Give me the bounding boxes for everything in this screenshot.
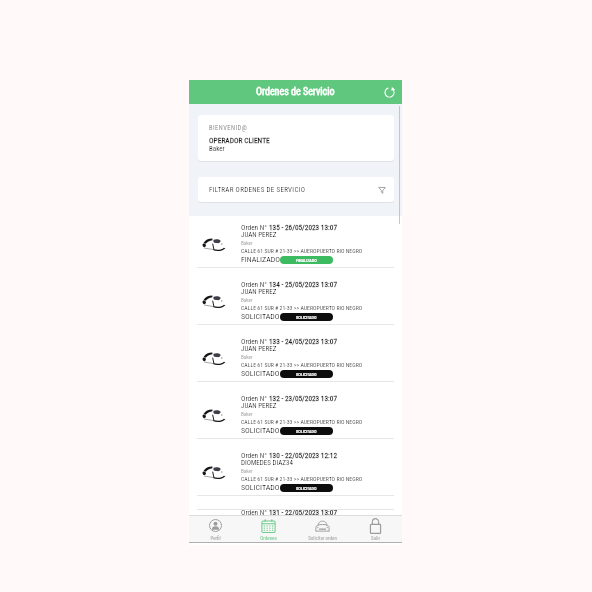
button[interactable]: Orden N°	[189, 382, 402, 439]
staticText: Ordenes	[260, 535, 277, 541]
staticText: SOLICITADO	[296, 315, 317, 320]
staticText: CALLE 61 SUR # 21-33 >> AUEROPUERTO RIO …	[241, 362, 363, 369]
staticText: JUAN PEREZ	[241, 345, 277, 353]
staticText: Salir	[371, 535, 380, 541]
staticText: Baker	[241, 468, 253, 474]
button[interactable]: Perfil	[189, 516, 242, 541]
button[interactable]: Ordenes	[242, 516, 295, 541]
button[interactable]: Orden N°	[189, 268, 402, 325]
button[interactable]: BIENVENID@	[198, 115, 394, 161]
staticText: Solicitar orden	[308, 535, 337, 541]
button[interactable]: Refresh	[380, 83, 398, 101]
button[interactable]: FILTRAR ORDENES DE SERVICIO	[198, 177, 394, 202]
staticText: SOLICITADO	[241, 483, 280, 492]
staticText: Orden N°	[241, 223, 269, 232]
staticText: Baker	[209, 145, 225, 153]
staticText: Baker	[241, 354, 253, 360]
staticText: DIOMEDES DIAZ34	[241, 459, 293, 467]
button[interactable]: Solicitar orden	[296, 516, 349, 541]
staticText: Orden N°	[241, 280, 269, 289]
staticText: FINALIZADO	[296, 258, 317, 263]
staticText: JUAN PEREZ	[241, 288, 277, 296]
staticText: 130 - 22/05/2023 12:12	[269, 451, 337, 460]
staticText: Perfil	[210, 535, 221, 541]
staticText: OPERADOR CLIENTE	[209, 136, 270, 145]
staticText: Baker	[241, 240, 253, 246]
staticText: SOLICITADO	[296, 429, 317, 434]
staticText: CALLE 61 SUR # 21-33 >> AUEROPUERTO RIO …	[241, 305, 363, 312]
staticText: Orden N°	[241, 394, 269, 403]
staticText: Orden N°	[241, 508, 269, 515]
staticText: Baker	[241, 297, 253, 303]
staticText: 131 - 22/05/2023 13:07	[269, 508, 337, 515]
staticText: 132 - 23/05/2023 13:07	[269, 394, 337, 403]
staticText: FILTRAR ORDENES DE SERVICIO	[209, 186, 306, 194]
staticText: SOLICITADO	[241, 312, 280, 321]
staticText: 134 - 25/05/2023 13:07	[269, 280, 337, 289]
staticText: SOLICITADO	[241, 426, 280, 435]
staticText: CALLE 61 SUR # 21-33 >> AUEROPUERTO RIO …	[241, 476, 363, 483]
staticText: SOLICITADO	[296, 372, 317, 377]
staticText: BIENVENID@	[209, 124, 248, 132]
staticText: Orden N°	[241, 337, 269, 346]
button[interactable]: Orden N°	[189, 496, 402, 510]
button[interactable]: Orden N°	[189, 216, 402, 268]
staticText: CALLE 61 SUR # 21-33 >> AUEROPUERTO RIO …	[241, 248, 363, 255]
staticText: Orden N°	[241, 451, 269, 460]
staticText: JUAN PEREZ	[241, 231, 277, 239]
staticText: SOLICITADO	[241, 369, 280, 378]
button[interactable]: Salir	[349, 516, 402, 541]
staticText: SOLICITADO	[296, 486, 317, 491]
staticText: JUAN PEREZ	[241, 402, 277, 410]
button[interactable]: Orden N°	[189, 325, 402, 382]
staticText: CALLE 61 SUR # 21-33 >> AUEROPUERTO RIO …	[241, 419, 363, 426]
staticText: FINALIZADO	[241, 255, 280, 264]
staticText: 135 - 26/05/2023 13:07	[269, 223, 337, 232]
button[interactable]: Orden N°	[189, 439, 402, 496]
staticText: 133 - 24/05/2023 13:07	[269, 337, 337, 346]
staticText: Baker	[241, 411, 253, 417]
staticText: Ordenes de Servicio	[256, 86, 335, 98]
